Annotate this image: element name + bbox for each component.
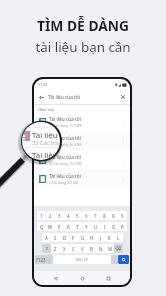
staticText: 7 — [94, 213, 97, 219]
staticText: Tài liệu của tôi — [48, 94, 80, 101]
staticText: O — [112, 224, 116, 230]
button[interactable]: Q — [37, 222, 46, 231]
button[interactable]: Back — [51, 274, 60, 283]
button[interactable]: E — [55, 222, 64, 231]
button[interactable]: , — [46, 255, 53, 264]
button[interactable]: 6 — [82, 211, 91, 220]
button[interactable]: 4 — [64, 211, 73, 220]
staticText: C — [72, 246, 75, 252]
staticText: N — [99, 246, 103, 252]
staticText: T — [76, 224, 79, 230]
button[interactable]: F — [69, 233, 78, 242]
button[interactable]: . — [111, 255, 118, 264]
button[interactable]: Home — [78, 274, 87, 283]
staticText: Y — [85, 224, 88, 230]
button[interactable]: D — [60, 233, 69, 242]
button[interactable]: C — [69, 244, 78, 253]
button[interactable]: Z — [51, 244, 60, 253]
staticText: 2 — [49, 213, 52, 219]
button[interactable]: W — [46, 222, 55, 231]
button[interactable]: O — [109, 222, 118, 231]
staticText: Tài liệu của tôi — [49, 116, 81, 123]
button[interactable]: More options — [119, 156, 127, 164]
staticText: Z — [54, 246, 57, 252]
button[interactable]: More options — [119, 118, 127, 126]
staticText: W — [48, 224, 53, 230]
button[interactable]: J — [96, 233, 105, 242]
staticText: 11:23 — [38, 82, 48, 87]
staticText: 3 — [58, 213, 61, 219]
button[interactable]: 1 — [37, 211, 46, 220]
button[interactable]: Recents — [104, 274, 113, 283]
button[interactable]: 0 — [118, 211, 127, 220]
button[interactable]: U — [91, 222, 100, 231]
button[interactable]: I — [100, 222, 109, 231]
staticText: D — [63, 235, 67, 241]
button[interactable]: 7 — [91, 211, 100, 220]
button[interactable]: ⌫ — [114, 244, 123, 253]
staticText: I — [104, 224, 106, 230]
staticText: 32 Các trang, 15.7 MB — [49, 162, 82, 166]
button[interactable]: P — [118, 222, 127, 231]
button[interactable]: N — [96, 244, 105, 253]
button[interactable]: B — [87, 244, 96, 253]
button[interactable]: M — [105, 244, 114, 253]
staticText: 6 — [85, 213, 88, 219]
button[interactable]: Back — [37, 93, 45, 101]
button[interactable]: 3 — [55, 211, 64, 220]
button[interactable]: EN • LP — [53, 255, 111, 264]
staticText: X — [63, 246, 66, 252]
button[interactable]: Search — [118, 255, 129, 264]
button[interactable]: X — [60, 244, 69, 253]
staticText: 0 — [121, 213, 124, 219]
staticText: Tài liệu của tôi — [49, 173, 81, 180]
button[interactable]: 2 — [46, 211, 55, 220]
button[interactable]: R — [64, 222, 73, 231]
button[interactable]: K — [105, 233, 114, 242]
button[interactable]: G — [78, 233, 87, 242]
staticText: E — [58, 224, 61, 230]
button[interactable]: ⇧ — [42, 244, 51, 253]
staticText: M — [108, 246, 112, 252]
staticText: ⌫ — [115, 246, 122, 251]
staticText: ?123 — [36, 257, 46, 263]
button[interactable]: Y — [82, 222, 91, 231]
staticText: B — [90, 246, 93, 252]
staticText: F — [72, 235, 75, 241]
button[interactable]: Tài liệu của tôi — [34, 112, 130, 131]
staticText: 5 — [76, 213, 79, 219]
staticText: 2 Các trang, 8.7 MB — [49, 181, 78, 185]
staticText: J — [100, 235, 102, 241]
button[interactable]: A — [42, 233, 51, 242]
button[interactable]: 8 — [100, 211, 109, 220]
staticText: TÌM DỄ DÀNG — [37, 16, 129, 35]
button[interactable]: V — [78, 244, 87, 253]
staticText: EN • LP — [76, 257, 89, 262]
button[interactable]: More options — [119, 137, 127, 145]
staticText: . — [114, 257, 116, 263]
button[interactable]: 9 — [109, 211, 118, 220]
staticText: 32 Các trang, 15.7 MB — [49, 124, 82, 128]
staticText: Tài liệu — [32, 130, 60, 141]
staticText: Tài liệu của tôi — [49, 154, 81, 161]
button[interactable]: Clear — [119, 93, 127, 101]
staticText: H — [90, 235, 94, 241]
button[interactable]: S — [51, 233, 60, 242]
staticText: U — [94, 224, 98, 230]
staticText: 1 — [40, 213, 43, 219]
button[interactable]: L — [114, 233, 123, 242]
button[interactable]: 5 — [73, 211, 82, 220]
staticText: G — [81, 235, 85, 241]
button[interactable]: ?123 — [35, 255, 46, 264]
staticText: ⇧ — [45, 246, 49, 251]
button[interactable]: Tài liệu của tôi — [34, 169, 130, 188]
staticText: Tài liệu của tôi — [49, 135, 81, 142]
button[interactable]: Tài liệu của tôi — [34, 150, 130, 169]
button[interactable]: T — [73, 222, 82, 231]
staticText: S — [54, 235, 57, 241]
staticText: L — [117, 235, 120, 241]
button[interactable]: More options — [119, 175, 127, 183]
button[interactable]: Tài liệu của tôi — [34, 131, 130, 150]
button[interactable]: H — [87, 233, 96, 242]
staticText: 18 Các trang, 46.4 MB — [49, 143, 82, 147]
